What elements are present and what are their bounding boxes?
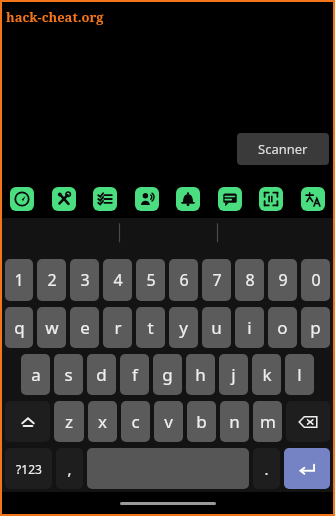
button[interactable]: 7: [202, 259, 231, 301]
staticText: j: [231, 363, 236, 386]
button[interactable]: 1: [5, 259, 33, 301]
button[interactable]: a: [21, 354, 50, 395]
staticText: c: [131, 410, 140, 433]
button[interactable]: r: [103, 307, 132, 348]
staticText: d: [96, 363, 107, 386]
staticText: 9: [278, 269, 288, 291]
staticText: y: [179, 316, 188, 339]
staticText: s: [64, 363, 73, 386]
staticText: v: [164, 410, 173, 433]
staticText: 8: [245, 269, 255, 291]
button[interactable]: m: [253, 401, 282, 442]
button[interactable]: j: [219, 354, 248, 395]
button[interactable]: c: [121, 401, 150, 442]
button[interactable]: 5: [136, 259, 165, 301]
staticText: 1: [14, 269, 24, 291]
button[interactable]: 2: [37, 259, 66, 301]
staticText: l: [297, 363, 302, 386]
staticText: ,: [67, 459, 72, 479]
button[interactable]: Translate: [301, 187, 325, 211]
staticText: n: [229, 410, 240, 433]
button[interactable]: 0: [301, 259, 330, 301]
button[interactable]: o: [268, 307, 297, 348]
staticText: r: [114, 316, 122, 339]
staticText: z: [65, 410, 73, 433]
button[interactable]: u: [202, 307, 231, 348]
staticText: e: [80, 316, 90, 339]
staticText: a: [31, 363, 41, 386]
staticText: Scanner: [258, 140, 308, 158]
button[interactable]: k: [252, 354, 281, 395]
staticText: h: [195, 363, 206, 386]
button[interactable]: Scanner: [237, 133, 329, 165]
staticText: m: [260, 410, 276, 433]
button[interactable]: b: [187, 401, 216, 442]
staticText: 3: [80, 269, 90, 291]
button[interactable]: Backspace: [286, 401, 330, 442]
button[interactable]: x: [88, 401, 117, 442]
button[interactable]: q: [5, 307, 33, 348]
staticText: b: [196, 410, 207, 433]
button[interactable]: Checklist: [93, 187, 117, 211]
button[interactable]: Shift: [5, 401, 50, 442]
button[interactable]: 4: [103, 259, 132, 301]
staticText: i: [247, 316, 252, 339]
button[interactable]: l: [285, 354, 314, 395]
staticText: 5: [146, 269, 156, 291]
staticText: 7: [212, 269, 222, 291]
button[interactable]: 8: [235, 259, 264, 301]
button[interactable]: Voice contact: [135, 187, 159, 211]
button[interactable]: d: [87, 354, 116, 395]
button[interactable]: v: [154, 401, 183, 442]
button[interactable]: z: [54, 401, 84, 442]
staticText: o: [277, 316, 288, 339]
button[interactable]: y: [169, 307, 198, 348]
button[interactable]: 3: [70, 259, 99, 301]
button[interactable]: s: [54, 354, 83, 395]
button[interactable]: n: [220, 401, 249, 442]
button[interactable]: Tools: [52, 187, 76, 211]
staticText: 0: [311, 269, 321, 291]
button[interactable]: t: [136, 307, 165, 348]
button[interactable]: Scan code: [259, 187, 283, 211]
button[interactable]: g: [153, 354, 182, 395]
staticText: .: [264, 459, 269, 479]
button[interactable]: i: [235, 307, 264, 348]
staticText: hack-cheat.org: [6, 8, 104, 26]
button[interactable]: 9: [268, 259, 297, 301]
staticText: k: [262, 363, 272, 386]
staticText: p: [310, 316, 321, 339]
staticText: q: [14, 316, 25, 339]
staticText: t: [147, 316, 154, 339]
staticText: x: [98, 410, 107, 433]
button[interactable]: ,: [56, 448, 83, 489]
button[interactable]: w: [37, 307, 66, 348]
button[interactable]: ?123: [5, 448, 52, 489]
button[interactable]: Alerts: [176, 187, 200, 211]
staticText: 2: [47, 269, 57, 291]
staticText: u: [211, 316, 222, 339]
staticText: 6: [179, 269, 189, 291]
button[interactable]: Enter: [284, 448, 330, 489]
button[interactable]: h: [186, 354, 215, 395]
button[interactable]: e: [70, 307, 99, 348]
staticText: 4: [113, 269, 123, 291]
staticText: g: [162, 363, 173, 386]
button[interactable]: Messages: [218, 187, 242, 211]
button[interactable]: p: [301, 307, 330, 348]
staticText: ?123: [16, 461, 42, 477]
staticText: w: [45, 316, 59, 339]
staticText: f: [132, 363, 138, 386]
button[interactable]: .: [253, 448, 280, 489]
button[interactable]: 6: [169, 259, 198, 301]
button[interactable]: f: [120, 354, 149, 395]
button[interactable]: Speed test: [10, 187, 34, 211]
button[interactable]: [87, 448, 249, 489]
